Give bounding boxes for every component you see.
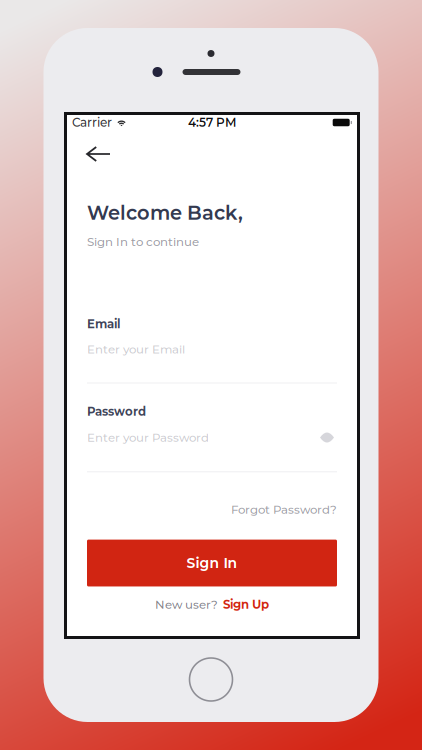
staticText: Enter your Email: [87, 342, 185, 356]
staticText: Sign In: [186, 555, 237, 571]
staticText: 4:57 PM: [188, 115, 236, 130]
button[interactable]: Back: [67, 130, 140, 173]
staticText: Welcome Back,: [87, 201, 243, 225]
staticText: Sign In to continue: [87, 235, 199, 249]
staticText: Enter your Password: [87, 430, 209, 445]
staticText: New user?: [155, 597, 218, 612]
button[interactable]: Sign In: [67, 517, 357, 586]
staticText: Carrier: [72, 115, 112, 130]
staticText: Password: [87, 404, 146, 419]
staticText: Sign Up: [223, 597, 269, 612]
staticText: Email: [87, 317, 120, 331]
button[interactable]: New user?: [67, 586, 357, 612]
button[interactable]: Show password: [317, 430, 337, 445]
button[interactable]: Forgot Password?: [67, 472, 357, 517]
staticText: Forgot Password?: [231, 502, 337, 517]
